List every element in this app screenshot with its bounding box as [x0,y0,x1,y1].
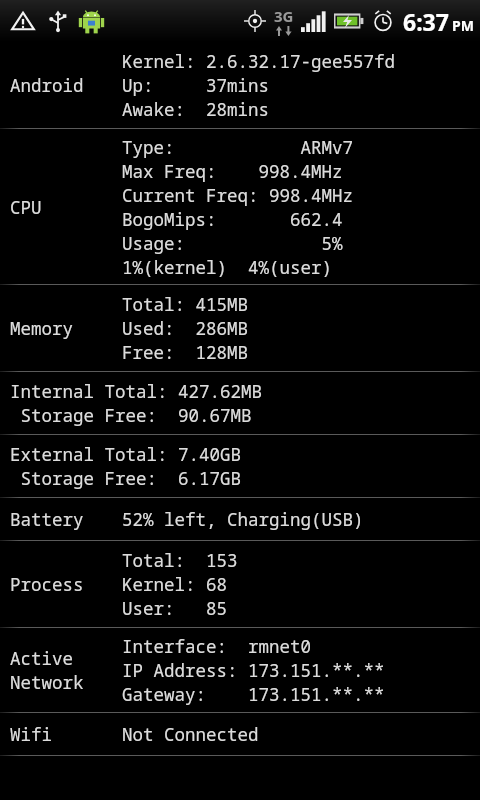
staticText: Not Connected [122,722,259,746]
staticText: 1%(kernel) 4%(user) [122,255,332,279]
staticText: Total: 415MB [122,292,248,316]
button[interactable]: Process [0,541,480,627]
staticText: Used: 286MB [122,316,248,340]
staticText: IP Address: 173.151.**.** [122,658,385,682]
staticText: Active Network [10,646,84,694]
staticText: Internal Total: 427.62MB [10,379,262,403]
staticText: 3G [274,6,294,26]
staticText: Gateway: 173.151.**.** [122,682,385,706]
staticText: Kernel: 68 [122,572,227,596]
staticText: Process [10,572,84,596]
other: Warning [10,8,36,34]
staticText: Memory [10,316,73,340]
staticText: Max Freq: 998.4MHz [122,159,343,183]
staticText: Storage Free: 90.67MB [10,403,252,427]
other: Android [78,8,105,35]
staticText: Storage Free: 6.17GB [10,466,241,490]
button[interactable]: CPU [0,129,480,284]
staticText: 52% left, Charging(USB) [122,507,364,531]
staticText: 6:37 [403,6,449,37]
staticText: Awake: 28mins [122,97,269,121]
staticText: External Total: 7.40GB [10,442,241,466]
button[interactable]: Active Network [0,628,480,712]
button[interactable]: Battery [0,498,480,540]
other: GPS [243,9,267,33]
staticText: Kernel: 2.6.32.17-gee557fd [122,49,395,73]
staticText: CPU [10,195,42,219]
button[interactable]: Memory [0,285,480,371]
staticText: BogoMips: 662.4 [122,207,343,231]
other: Battery charging [334,12,364,30]
staticText: User: 85 [122,596,227,620]
staticText: Interface: rmnet0 [122,634,311,658]
other: 3G data [274,6,294,36]
other: USB connected [46,9,70,33]
staticText: Free: 128MB [122,340,248,364]
staticText: Wifi [10,722,52,746]
staticText: Total: 153 [122,548,238,572]
other: Alarm set [371,9,395,33]
button[interactable]: Wifi [0,713,480,755]
staticText: Type: ARMv7 [122,135,353,159]
staticText: Battery [10,507,84,531]
staticText: PM [452,16,474,35]
staticText: Android [10,73,84,97]
staticText: Up: 37mins [122,73,269,97]
button[interactable]: External Total: 7.40GB [0,435,480,497]
button[interactable]: Android [0,42,480,128]
staticText: Usage: 5% [122,231,343,255]
other: Signal strength [301,10,327,32]
staticText: Current Freq: 998.4MHz [122,183,353,207]
button[interactable]: Internal Total: 427.62MB [0,372,480,434]
